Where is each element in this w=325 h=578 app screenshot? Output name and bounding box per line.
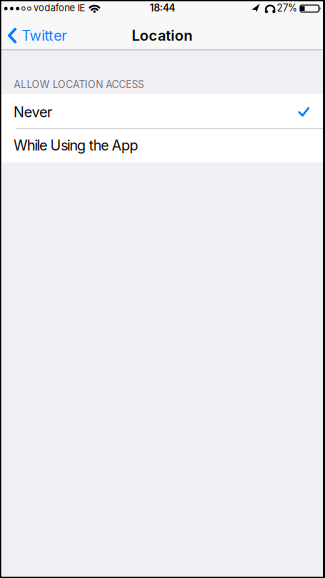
staticText: Location bbox=[132, 27, 193, 44]
button[interactable]: Never bbox=[1, 94, 323, 128]
staticText: 27% bbox=[277, 2, 298, 14]
staticText: vodafone IE bbox=[34, 2, 86, 13]
staticText: 18:44 bbox=[150, 2, 175, 14]
button[interactable]: Back to Twitter settings bbox=[1, 27, 67, 44]
staticText: Twitter bbox=[22, 27, 67, 44]
button[interactable]: While Using the App bbox=[1, 129, 323, 162]
staticText: Never bbox=[13, 103, 52, 121]
staticText: ALLOW LOCATION ACCESS bbox=[14, 78, 144, 90]
staticText: While Using the App bbox=[13, 137, 139, 154]
